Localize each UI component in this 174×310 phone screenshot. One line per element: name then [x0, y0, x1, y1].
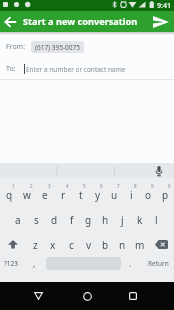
staticText: m [135, 238, 145, 252]
staticText: q [6, 188, 13, 202]
button[interactable]: Return [139, 255, 174, 280]
button[interactable]: v [80, 230, 97, 255]
staticText: x [50, 238, 56, 252]
staticText: c [69, 238, 74, 252]
button[interactable]: ?123 [0, 255, 26, 280]
button[interactable] [31, 289, 45, 303]
button[interactable]: b [97, 230, 114, 255]
button[interactable]: 6 [89, 180, 106, 205]
button[interactable]: h [97, 205, 114, 230]
button[interactable] [148, 12, 174, 32]
staticText: r [61, 188, 66, 202]
button[interactable]: d [45, 205, 63, 230]
button[interactable]: k [131, 205, 148, 230]
button[interactable]: s [27, 205, 45, 230]
staticText: 1 [12, 183, 15, 189]
staticText: Enter a number or contact name [26, 65, 126, 74]
button[interactable]: 2 [18, 180, 36, 205]
staticText: y [95, 188, 101, 202]
staticText: e [42, 188, 48, 202]
staticText: From: [6, 42, 26, 52]
staticText: ?123 [4, 259, 18, 268]
button[interactable]: 7 [106, 180, 123, 205]
button[interactable]: m [131, 230, 148, 255]
button[interactable]: 1 [0, 180, 18, 205]
button[interactable]: 5 [72, 180, 89, 205]
button[interactable] [153, 165, 165, 177]
staticText: z [33, 238, 38, 252]
button[interactable] [0, 12, 20, 32]
staticText: i [130, 188, 133, 202]
staticText: 3 [48, 183, 51, 189]
staticText: 2 [30, 183, 33, 189]
staticText: g [85, 213, 92, 227]
button[interactable] [148, 230, 174, 255]
staticText: v [86, 238, 92, 252]
staticText: 9:41 [157, 1, 171, 11]
button[interactable]: , [26, 255, 43, 280]
button[interactable]: c [62, 230, 80, 255]
staticText: 5 [83, 183, 86, 189]
staticText: a [15, 213, 21, 227]
button[interactable]: 0 [157, 180, 174, 205]
button[interactable]: a [9, 205, 27, 230]
staticText: . [129, 258, 132, 270]
button[interactable] [80, 289, 94, 303]
button[interactable]: l [148, 205, 165, 230]
staticText: Return [148, 259, 169, 268]
staticText: To: [6, 64, 16, 74]
button[interactable]: . [122, 255, 139, 280]
button[interactable]: 4 [54, 180, 72, 205]
staticText: j [121, 213, 124, 227]
button[interactable]: 3 [36, 180, 54, 205]
button[interactable]: 9 [140, 180, 157, 205]
staticText: 8 [134, 183, 137, 189]
staticText: (617) 395-0075 [35, 43, 80, 52]
staticText: k [137, 213, 143, 227]
staticText: p [162, 188, 169, 202]
button[interactable]: n [114, 230, 131, 255]
button[interactable] [126, 289, 140, 303]
staticText: w [23, 188, 31, 202]
button[interactable]: f [63, 205, 80, 230]
staticText: o [145, 188, 152, 202]
staticText: 6 [100, 183, 103, 189]
button[interactable]: 8 [123, 180, 140, 205]
staticText: h [102, 213, 109, 227]
staticText: t [79, 188, 83, 202]
button[interactable]: z [26, 230, 44, 255]
staticText: b [102, 238, 109, 252]
staticText: u [111, 188, 118, 202]
staticText: 0 [168, 183, 171, 189]
button[interactable]: j [114, 205, 131, 230]
staticText: l [155, 213, 158, 227]
staticText: s [34, 213, 39, 227]
button[interactable] [43, 255, 122, 280]
staticText: n [119, 238, 126, 252]
staticText: 9 [151, 183, 154, 189]
staticText: 7 [117, 183, 120, 189]
staticText: f [70, 213, 74, 227]
button[interactable] [0, 230, 26, 255]
staticText: Start a new conversation [23, 15, 138, 28]
staticText: d [51, 213, 58, 227]
button[interactable]: (617) 395-0075 [31, 41, 84, 53]
button[interactable]: g [80, 205, 97, 230]
button[interactable]: x [44, 230, 62, 255]
button[interactable]: To: [6, 63, 174, 75]
staticText: , [33, 258, 36, 270]
staticText: 4 [66, 183, 69, 189]
